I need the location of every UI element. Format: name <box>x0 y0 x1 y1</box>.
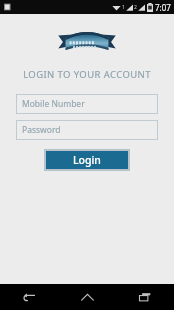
button[interactable]: Recent apps <box>116 284 174 310</box>
staticText: Password <box>22 124 61 136</box>
staticText: 1 <box>122 4 125 11</box>
staticText: Login <box>73 153 101 167</box>
button[interactable]: Back <box>0 284 58 310</box>
button[interactable]: Login <box>46 151 128 169</box>
staticText: 7:07 <box>155 2 171 13</box>
button[interactable]: Password <box>16 120 158 140</box>
button[interactable]: Home <box>58 284 116 310</box>
staticText: Mobile Number <box>22 98 85 110</box>
button[interactable]: Mobile Number <box>16 94 158 114</box>
staticText: LOGIN TO YOUR ACCOUNT <box>23 68 151 81</box>
staticText: 2 <box>134 4 137 11</box>
